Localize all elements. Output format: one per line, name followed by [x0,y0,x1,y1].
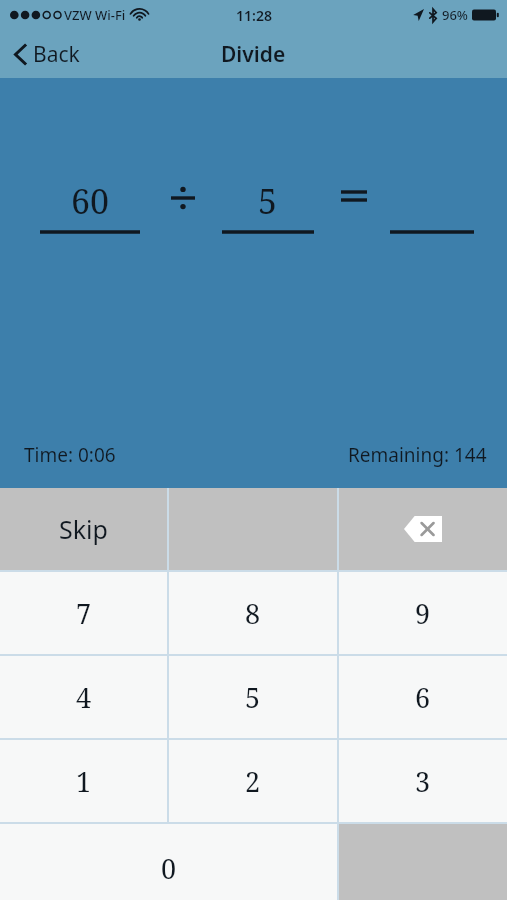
button[interactable]: Backspace [339,488,507,570]
staticText: 7 [76,595,92,632]
staticText: 1 [76,763,92,800]
staticText: Divide [221,40,286,69]
staticText: 9 [415,595,431,632]
button[interactable]: Back [0,34,98,75]
staticText: 60 [71,178,110,224]
button[interactable]: 1 [0,740,167,822]
button[interactable]: 2 [169,740,337,822]
staticText: 11:28 [236,6,272,25]
button[interactable]: 3 [339,740,507,822]
staticText: Skip [59,512,108,546]
button[interactable]: 4 [0,656,167,738]
button[interactable]: Skip [0,488,167,570]
staticText: 5 [245,679,261,716]
staticText: 3 [415,763,431,800]
button[interactable]: 0 [0,824,337,900]
staticText: 0 [161,850,177,887]
staticText: VZW Wi-Fi [64,6,126,24]
staticText: Remaining: 144 [348,442,487,468]
staticText: 4 [76,679,92,716]
staticText: 2 [245,763,261,800]
staticText: 6 [415,679,431,716]
staticText: 5 [258,178,278,224]
button[interactable]: 9 [339,572,507,654]
staticText: Back [33,40,80,69]
button[interactable]: 6 [339,656,507,738]
staticText: 96% [442,6,468,24]
staticText: 8 [245,595,261,632]
button[interactable]: 8 [169,572,337,654]
button[interactable]: 5 [169,656,337,738]
staticText: Time: 0:06 [24,442,116,468]
button[interactable]: 7 [0,572,167,654]
